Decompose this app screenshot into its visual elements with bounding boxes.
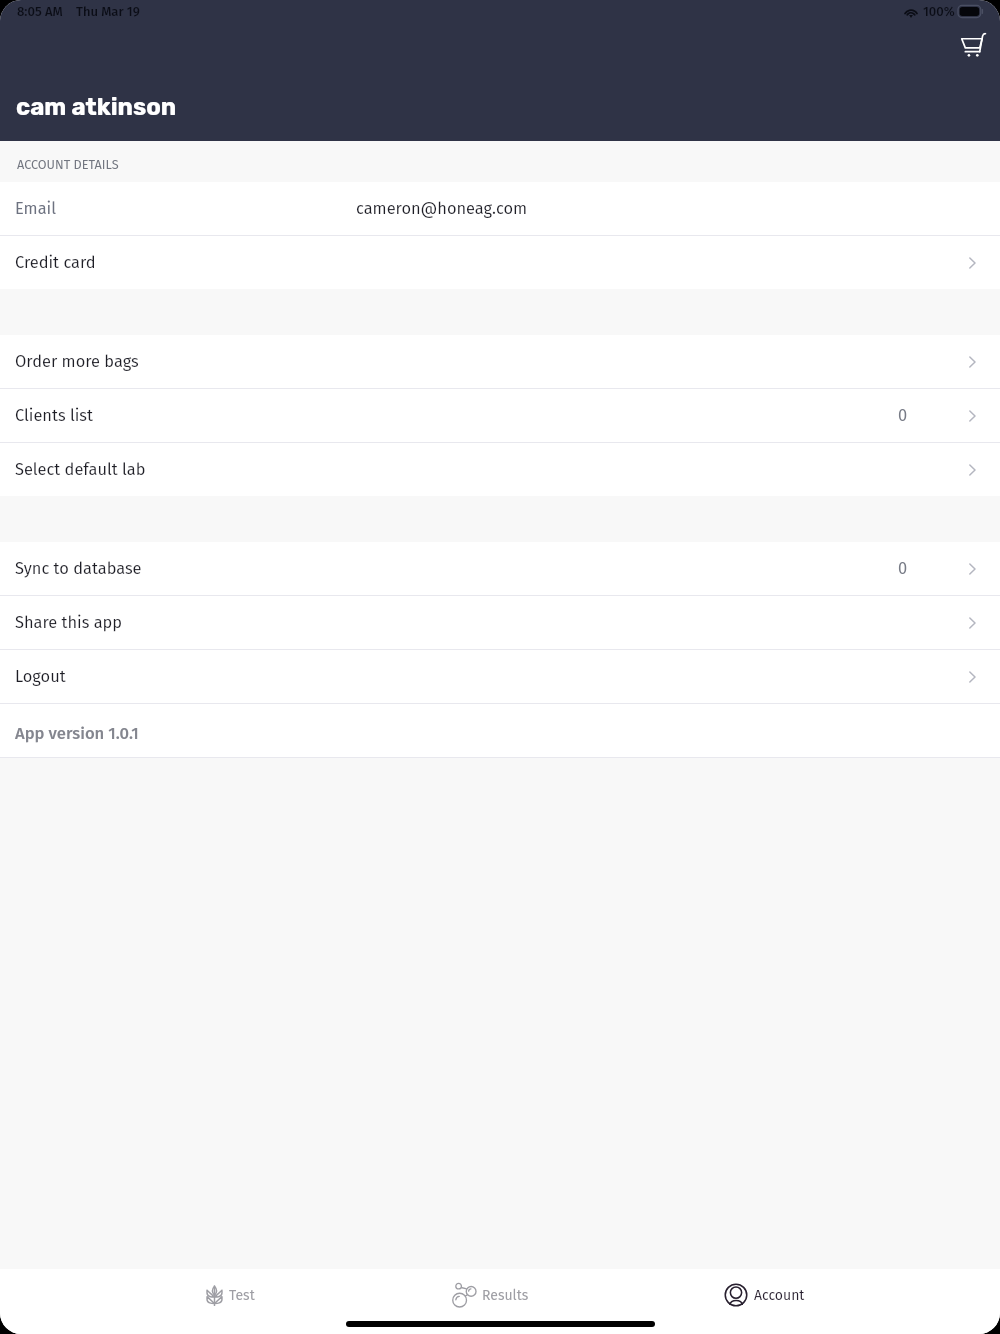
staticText: 0 <box>898 406 908 426</box>
staticText: 8:05 AM <box>17 4 63 20</box>
staticText: Test <box>229 1287 255 1304</box>
button[interactable]: Test <box>206 1269 255 1321</box>
staticText: 100% <box>923 4 955 20</box>
button[interactable]: Clients list <box>0 389 1000 442</box>
staticText: ACCOUNT DETAILS <box>17 157 119 172</box>
staticText: Order more bags <box>15 352 139 372</box>
staticText: 0 <box>898 559 908 579</box>
button[interactable]: Sync to database <box>0 542 1000 595</box>
staticText: Share this app <box>15 613 123 633</box>
staticText: Logout <box>15 667 66 687</box>
staticText: Clients list <box>15 406 93 426</box>
button[interactable]: Email <box>0 182 1000 235</box>
staticText: Email <box>15 199 56 219</box>
button[interactable]: Credit card <box>0 236 1000 289</box>
button[interactable]: Order more bags <box>0 335 1000 388</box>
staticText: Sync to database <box>15 559 142 579</box>
staticText: Thu Mar 19 <box>76 4 140 20</box>
staticText: App version 1.0.1 <box>15 723 139 743</box>
staticText: cam atkinson <box>16 93 177 121</box>
button[interactable]: Share this app <box>0 596 1000 649</box>
staticText: Results <box>482 1287 529 1304</box>
button[interactable]: Select default lab <box>0 443 1000 496</box>
button[interactable]: Results <box>451 1269 529 1321</box>
button[interactable]: Cart <box>951 23 995 67</box>
button[interactable]: Logout <box>0 650 1000 703</box>
staticText: Select default lab <box>15 460 146 480</box>
button[interactable]: Account <box>724 1269 805 1321</box>
staticText: Account <box>754 1287 805 1304</box>
staticText: cameron@honeag.com <box>356 199 528 219</box>
staticText: Credit card <box>15 253 96 273</box>
